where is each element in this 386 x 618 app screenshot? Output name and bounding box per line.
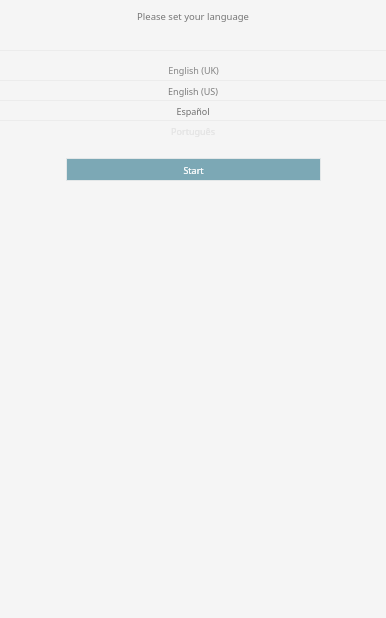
button[interactable]: English (US): [0, 81, 386, 100]
button[interactable]: Español: [0, 101, 386, 120]
button[interactable]: Start: [67, 159, 320, 180]
staticText: Español: [176, 105, 210, 117]
staticText: Português: [171, 125, 215, 137]
staticText: English (UK): [168, 64, 219, 76]
staticText: English (US): [168, 85, 218, 97]
staticText: Start: [183, 164, 204, 176]
staticText: Please set your language: [137, 10, 249, 23]
button[interactable]: English (UK): [0, 60, 386, 80]
